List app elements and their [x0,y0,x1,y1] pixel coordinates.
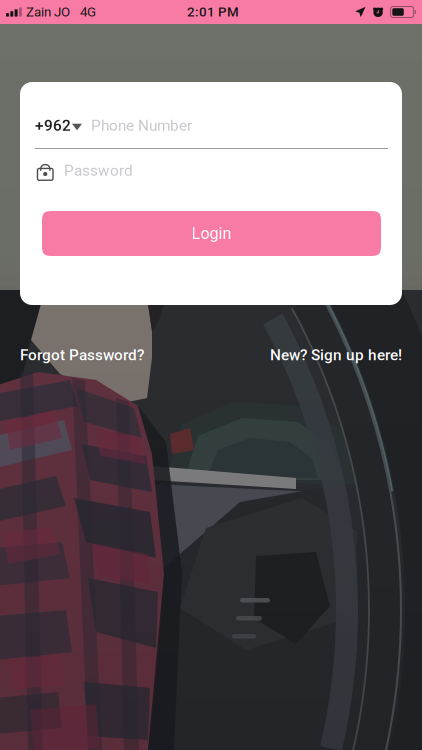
staticText: Phone Number [91,116,192,134]
button[interactable]: +962 [35,111,82,139]
staticText: +962 [35,116,71,134]
staticText: Login [191,224,231,243]
staticText: Zain JO [26,4,70,20]
button[interactable]: Login [42,211,381,256]
staticText: Forgot Password? [20,346,144,364]
staticText: 2:01 PM [187,4,239,20]
button[interactable]: Forgot Password? [20,346,144,364]
staticText: New? Sign up here! [270,346,402,364]
staticText: 4G [80,4,96,20]
button[interactable]: New? Sign up here! [270,346,402,364]
staticText: Password [64,161,133,179]
